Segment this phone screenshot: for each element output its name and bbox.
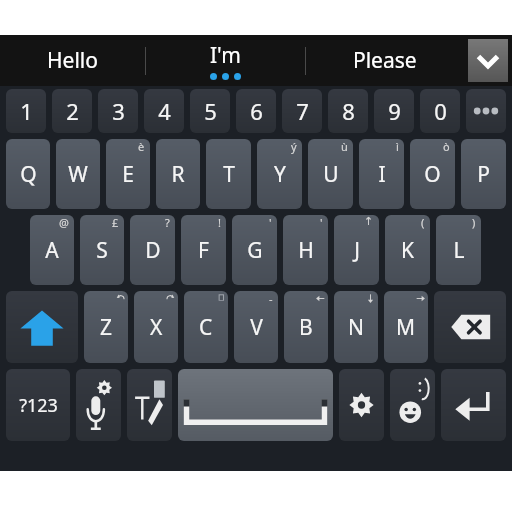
staticText: I	[378, 160, 386, 189]
staticText: A	[45, 236, 59, 265]
button[interactable]: W	[56, 139, 100, 209]
staticText: V	[250, 313, 263, 342]
staticText: N	[348, 313, 364, 342]
staticText: '	[320, 215, 323, 230]
button[interactable]: U	[308, 139, 353, 209]
staticText: 2	[66, 96, 79, 126]
button[interactable]: Backspace	[434, 291, 506, 363]
button[interactable]: D	[130, 215, 175, 285]
button[interactable]: P	[461, 139, 506, 209]
button[interactable]: G	[232, 215, 277, 285]
staticText: E	[122, 160, 134, 189]
button[interactable]: E	[106, 139, 150, 209]
staticText: Y	[274, 160, 286, 189]
staticText: D	[145, 236, 161, 265]
button[interactable]: More symbols	[466, 89, 506, 133]
button[interactable]: T	[206, 139, 251, 209]
staticText: 4	[158, 96, 171, 126]
button[interactable]: Voice input	[76, 369, 121, 441]
button[interactable]: Q	[6, 139, 50, 209]
button[interactable]: S	[80, 215, 124, 285]
button[interactable]: Emoji	[390, 369, 435, 441]
button[interactable]: J	[334, 215, 379, 285]
button[interactable]: L	[436, 215, 481, 285]
button[interactable]: I'm	[146, 35, 305, 86]
staticText: -	[269, 291, 273, 306]
staticText: O	[424, 160, 441, 189]
button[interactable]: 8	[328, 89, 368, 133]
staticText: ý	[291, 139, 297, 154]
button[interactable]: H	[283, 215, 328, 285]
staticText: ì	[396, 139, 399, 154]
button[interactable]: 6	[236, 89, 276, 133]
button[interactable]: N	[334, 291, 378, 363]
button[interactable]: Y	[257, 139, 302, 209]
staticText: X	[150, 313, 163, 342]
staticText: 1	[20, 96, 33, 126]
staticText: C	[199, 313, 213, 342]
staticText: R	[171, 160, 185, 189]
button[interactable]: C	[184, 291, 228, 363]
button[interactable]: 9	[374, 89, 414, 133]
staticText: '	[269, 215, 272, 230]
staticText: 9	[388, 96, 401, 126]
button[interactable]: Space	[178, 369, 333, 441]
button[interactable]: Enter	[441, 369, 506, 441]
staticText: 3	[112, 96, 125, 126]
button[interactable]: I	[359, 139, 404, 209]
staticText: H	[298, 236, 314, 265]
button[interactable]: Expand suggestions	[468, 39, 508, 82]
button[interactable]: Z	[84, 291, 128, 363]
button[interactable]: 5	[190, 89, 230, 133]
staticText: K	[401, 236, 414, 265]
staticText: S	[96, 236, 108, 265]
button[interactable]: V	[234, 291, 278, 363]
staticText: 7	[296, 96, 309, 126]
staticText: Hello	[47, 46, 98, 75]
button[interactable]: 3	[98, 89, 138, 133]
staticText: I'm	[210, 41, 241, 70]
staticText: è	[138, 139, 145, 154]
staticText: T	[223, 160, 235, 189]
button[interactable]: Symbols	[6, 369, 70, 441]
button[interactable]: Settings	[339, 369, 384, 441]
button[interactable]: B	[284, 291, 328, 363]
staticText: F	[198, 236, 209, 265]
button[interactable]: 2	[52, 89, 92, 133]
button[interactable]: 4	[144, 89, 184, 133]
button[interactable]: 7	[282, 89, 322, 133]
staticText: Q	[20, 160, 37, 189]
staticText: L	[453, 236, 465, 265]
staticText: ?123	[19, 393, 58, 418]
button[interactable]: M	[384, 291, 428, 363]
staticText: 6	[250, 96, 263, 126]
button[interactable]: F	[181, 215, 226, 285]
staticText: G	[247, 236, 263, 265]
button[interactable]: Handwriting	[127, 369, 172, 441]
staticText: )	[472, 215, 476, 230]
staticText: (	[421, 215, 425, 230]
staticText: B	[299, 313, 313, 342]
staticText: ↑	[364, 215, 374, 228]
button[interactable]: 1	[6, 89, 46, 133]
button[interactable]: X	[134, 291, 178, 363]
staticText: 0	[434, 96, 447, 126]
staticText: J	[354, 236, 360, 265]
staticText: £	[112, 215, 119, 230]
staticText: Z	[100, 313, 113, 342]
button[interactable]: 0	[420, 89, 460, 133]
button[interactable]: Hello	[0, 35, 145, 86]
button[interactable]: O	[410, 139, 455, 209]
staticText: !	[218, 215, 221, 230]
staticText: ?	[165, 215, 170, 230]
button[interactable]: R	[156, 139, 200, 209]
button[interactable]: K	[385, 215, 430, 285]
staticText: ò	[443, 139, 450, 154]
staticText: W	[68, 160, 88, 189]
button[interactable]: A	[30, 215, 74, 285]
button[interactable]: Shift	[6, 291, 78, 363]
staticText: U	[323, 160, 339, 189]
staticText: ù	[341, 139, 348, 154]
staticText: Please	[353, 46, 417, 75]
button[interactable]: Please	[306, 35, 464, 86]
